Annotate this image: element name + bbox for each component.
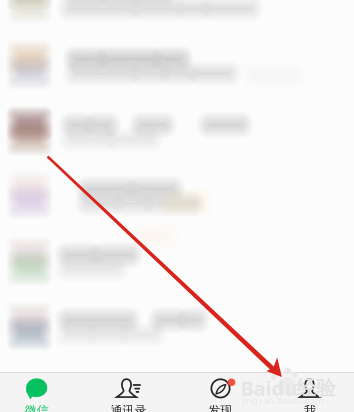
button[interactable]: 通讯录 — [83, 372, 174, 412]
staticText: 发现 — [208, 403, 232, 412]
button[interactable]: 发现 — [174, 372, 266, 412]
staticText: 通讯录 — [110, 403, 146, 412]
staticText: Baidu — [240, 375, 297, 401]
staticText: 我 — [304, 403, 316, 412]
staticText: jingyan.baidu.com — [242, 394, 324, 407]
button[interactable]: 微信 — [0, 372, 83, 412]
button[interactable]: 我 — [266, 372, 354, 412]
staticText: 微信 — [25, 403, 49, 412]
staticText: 经验 — [296, 376, 336, 400]
